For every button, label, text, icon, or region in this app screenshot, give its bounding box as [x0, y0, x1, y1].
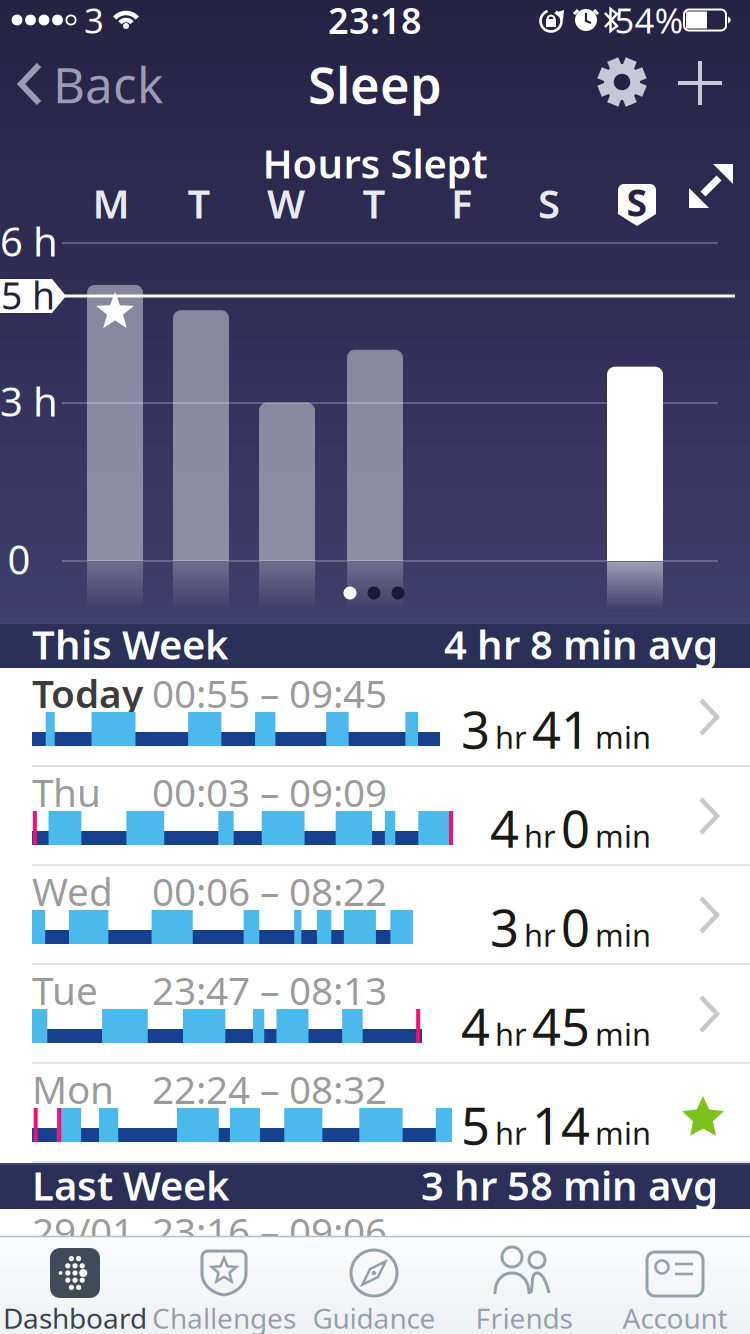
button[interactable]: Challenges — [150, 1236, 298, 1334]
staticText: 23:18 — [328, 0, 422, 44]
staticText: S — [538, 176, 560, 229]
staticText: Dashboard — [3, 1299, 147, 1334]
button[interactable]: Dashboard — [1, 1236, 149, 1334]
staticText: Challenges — [152, 1299, 296, 1334]
button[interactable]: Tue — [0, 965, 750, 1064]
staticText: 0 — [7, 532, 30, 585]
staticText: 54% — [614, 0, 683, 43]
staticText: Mon — [32, 1063, 114, 1115]
button[interactable]: Account — [601, 1236, 749, 1334]
staticText: T — [362, 176, 385, 229]
staticText: F — [451, 176, 473, 229]
button[interactable]: Guidance — [300, 1236, 448, 1334]
staticText: Account — [622, 1299, 727, 1334]
staticText: 29/01 — [32, 1205, 134, 1257]
button[interactable]: Thu — [0, 767, 750, 866]
staticText: 3 hr 0 min — [490, 893, 651, 961]
staticText: Tue — [32, 964, 98, 1016]
staticText: 23:47 – 08:13 — [152, 964, 387, 1016]
staticText: 4 hr 8 min avg — [444, 617, 718, 670]
staticText: This Week — [32, 617, 229, 670]
button[interactable]: Today — [0, 668, 750, 767]
staticText: S — [626, 177, 647, 227]
button[interactable]: Back — [0, 40, 170, 128]
staticText: 3 h — [0, 374, 58, 427]
staticText: 22:24 – 08:32 — [152, 1063, 387, 1115]
button[interactable] — [666, 49, 734, 117]
staticText: 3 hr 58 min avg — [421, 1158, 718, 1211]
staticText: 4 hr 45 min — [461, 992, 651, 1060]
staticText: Thu — [32, 766, 101, 818]
button[interactable]: 29/01 — [0, 1209, 750, 1263]
staticText: T — [187, 176, 210, 229]
button[interactable] — [675, 150, 747, 222]
staticText: Today — [32, 667, 143, 719]
staticText: Hours Slept — [262, 136, 487, 189]
staticText: W — [267, 176, 305, 229]
staticText: 5 hr 14 min — [461, 1091, 651, 1159]
staticText: Friends — [475, 1299, 572, 1334]
staticText: Back — [53, 51, 163, 117]
staticText: 00:55 – 09:45 — [152, 667, 387, 719]
staticText: 3 — [84, 0, 104, 43]
button[interactable]: Wed — [0, 866, 750, 965]
staticText: 5 h — [1, 270, 55, 320]
staticText: Wed — [32, 865, 113, 917]
staticText: Sleep — [308, 50, 442, 118]
staticText: Guidance — [312, 1299, 435, 1334]
staticText: 00:03 – 09:09 — [152, 766, 387, 818]
staticText: M — [92, 176, 129, 229]
staticText: Last Week — [32, 1158, 230, 1211]
button[interactable] — [588, 48, 656, 116]
staticText: 23:16 – 09:06 — [152, 1205, 387, 1257]
button[interactable]: Friends — [450, 1236, 598, 1334]
staticText: 3 hr 41 min — [461, 695, 651, 763]
staticText: 4 hr 0 min — [490, 794, 651, 862]
button[interactable]: Mon — [0, 1064, 750, 1163]
staticText: 00:06 – 08:22 — [152, 865, 387, 917]
staticText: 6 h — [0, 214, 58, 267]
